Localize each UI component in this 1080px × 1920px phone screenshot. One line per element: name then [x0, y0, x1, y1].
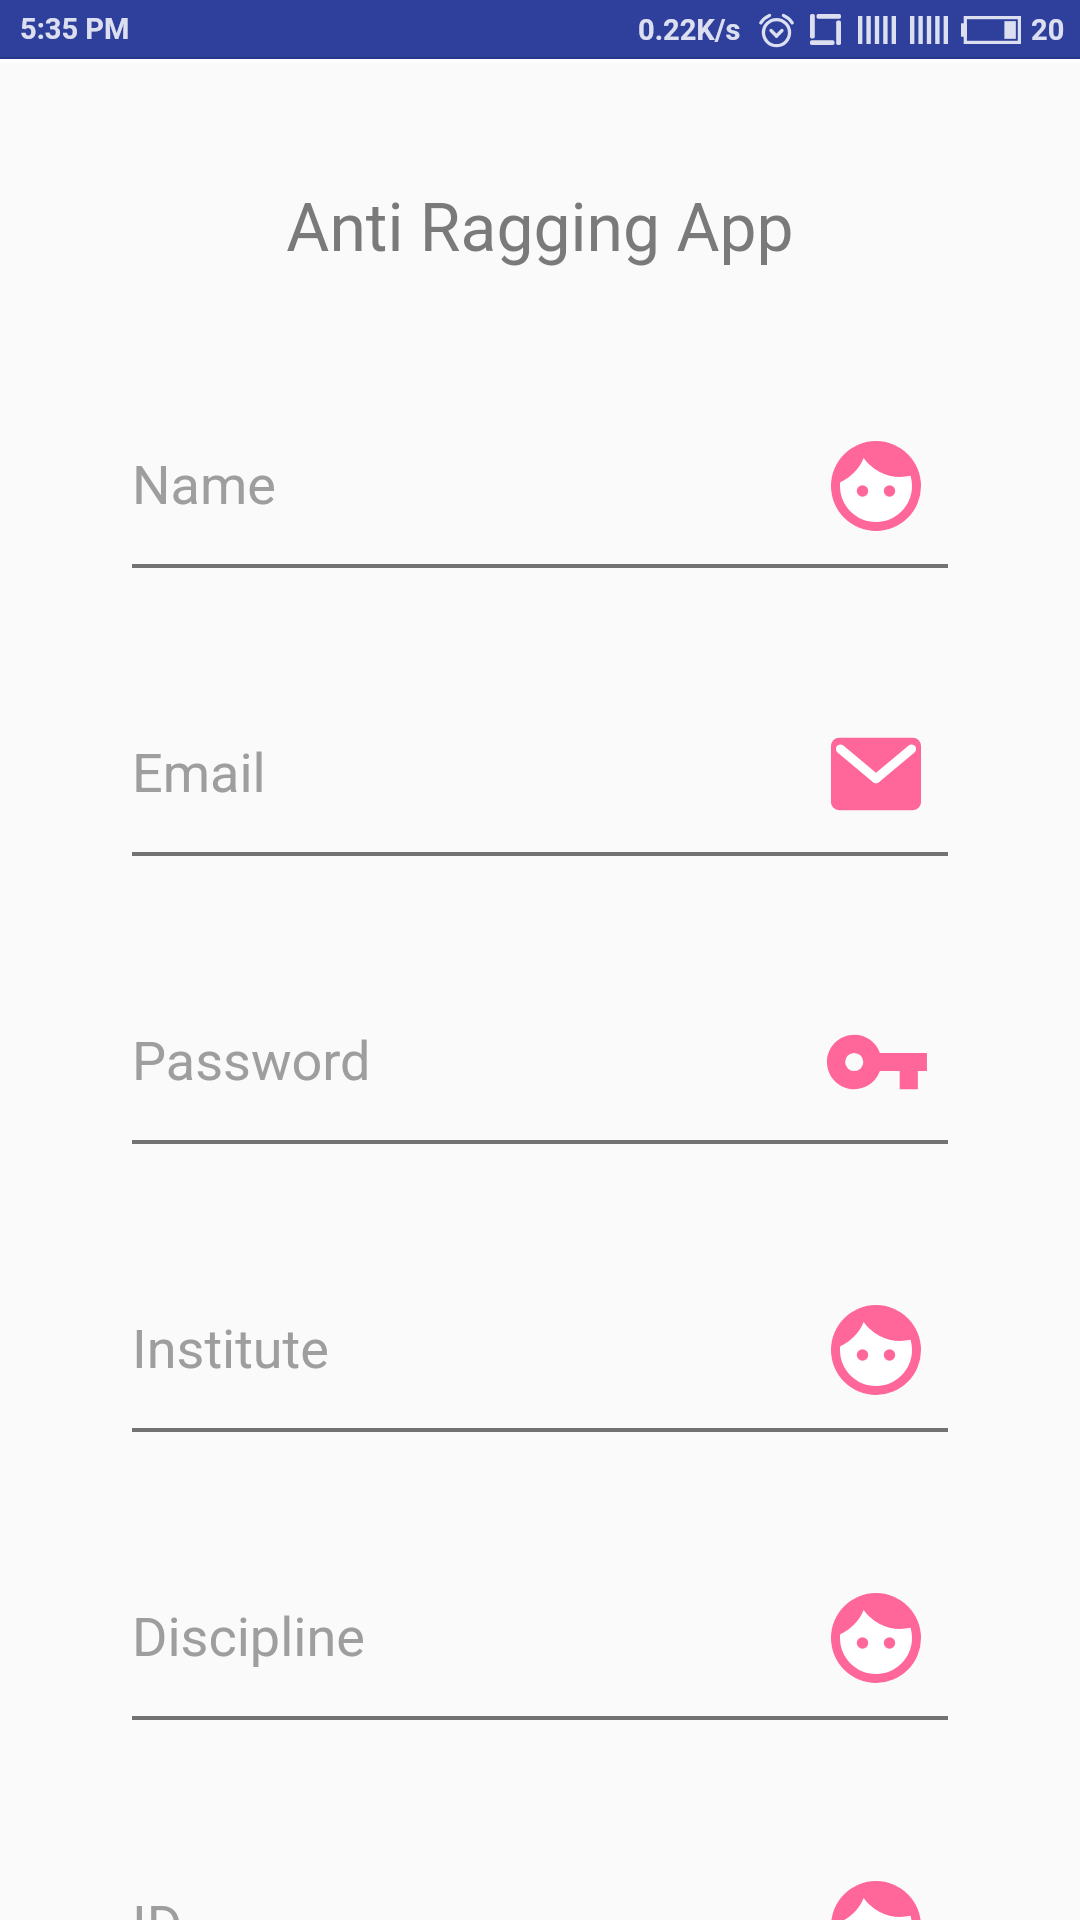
- button[interactable]: Profile: [831, 1593, 921, 1683]
- button[interactable]: Discipline: [0, 1590, 1080, 1750]
- button[interactable]: Email: [0, 726, 1080, 886]
- button[interactable]: Profile: [831, 441, 921, 531]
- staticText: ID: [132, 1894, 183, 1920]
- button[interactable]: Password: [0, 1014, 1080, 1174]
- button[interactable]: Name: [0, 438, 1080, 598]
- staticText: Discipline: [132, 1606, 365, 1669]
- button[interactable]: Profile: [831, 1881, 921, 1920]
- button[interactable]: Profile: [831, 1305, 921, 1395]
- staticText: 20: [1031, 13, 1065, 47]
- button[interactable]: Institute: [0, 1302, 1080, 1462]
- staticText: Institute: [132, 1318, 329, 1381]
- staticText: 0.22K/s: [638, 13, 741, 47]
- staticText: 5:35 PM: [20, 12, 130, 46]
- button[interactable]: Email: [831, 729, 921, 819]
- button[interactable]: ID: [0, 1878, 1080, 1920]
- staticText: Anti Ragging App: [0, 190, 1080, 267]
- staticText: Name: [132, 454, 276, 517]
- staticText: Password: [132, 1030, 371, 1093]
- staticText: Email: [132, 742, 266, 805]
- button[interactable]: Password: [831, 1017, 921, 1107]
